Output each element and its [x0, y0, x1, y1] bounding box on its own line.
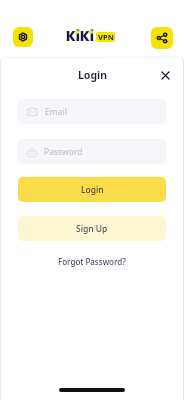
staticText: Login [81, 184, 104, 196]
button[interactable]: Password [18, 139, 166, 164]
staticText: Login [78, 68, 108, 82]
button[interactable]: Settings [13, 27, 33, 47]
staticText: Password [44, 146, 83, 158]
button[interactable]: Close [158, 68, 172, 82]
button[interactable]: Share [151, 27, 173, 49]
button[interactable]: Login [18, 177, 166, 202]
staticText: VPN [98, 32, 114, 42]
button[interactable]: Sign Up [18, 216, 166, 241]
button[interactable]: Forgot Password? [58, 256, 126, 267]
button[interactable]: Email [18, 99, 166, 124]
staticText: Sign Up [76, 223, 108, 235]
staticText: Email [45, 106, 67, 118]
staticText: KiKi [66, 27, 94, 46]
